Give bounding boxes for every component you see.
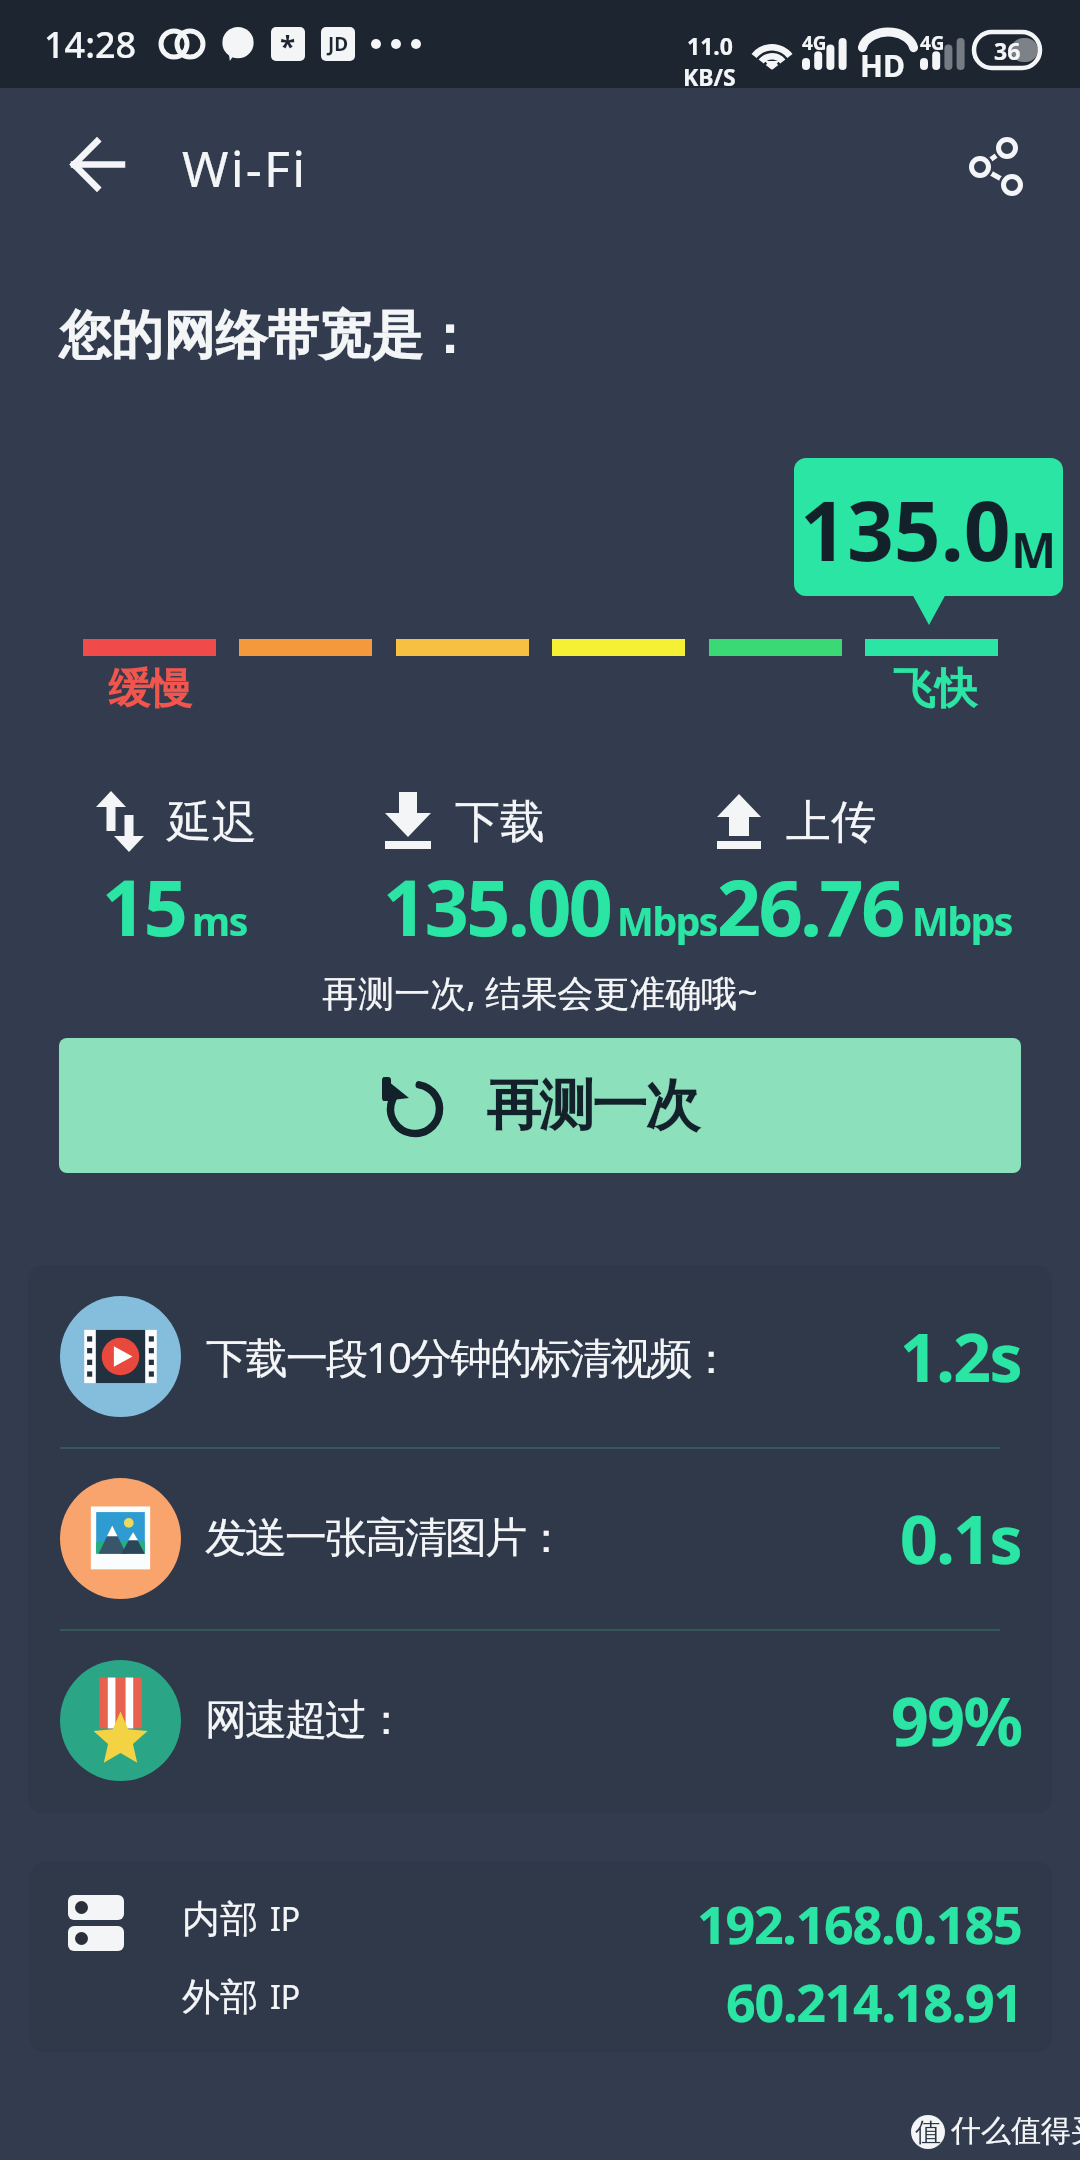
staticText: 11.0 xyxy=(687,30,733,61)
staticText: 内部 xyxy=(182,1895,258,1943)
button[interactable]: Share xyxy=(960,128,1030,206)
staticText: 99% xyxy=(891,1675,1022,1765)
staticText: 下载 xyxy=(455,794,545,851)
staticText: 135.0 xyxy=(800,473,1011,585)
staticText: 14:28 xyxy=(44,20,137,69)
staticText: 36 xyxy=(994,35,1021,66)
staticText: 135.00 xyxy=(383,854,611,959)
staticText: 26.76 xyxy=(717,854,903,959)
staticText: 网速超过： xyxy=(206,1694,406,1747)
staticText: 15 xyxy=(102,854,186,959)
staticText: 您的网络带宽是： xyxy=(59,303,475,369)
staticText: 1.2s xyxy=(900,1311,1022,1401)
button[interactable]: Back xyxy=(48,115,146,213)
staticText: Wi-Fi xyxy=(182,134,308,202)
staticText: 缓慢 xyxy=(108,663,192,716)
staticText: KB/S xyxy=(683,61,736,92)
staticText: 延迟 xyxy=(167,794,257,851)
staticText: IP xyxy=(270,1975,301,2019)
staticText: Mbps xyxy=(617,894,718,947)
staticText: 60.214.18.91 xyxy=(726,1966,1022,2028)
staticText: 值 xyxy=(915,2116,941,2149)
staticText: ms xyxy=(192,894,247,947)
button[interactable]: 发送一张高清图片： xyxy=(28,1447,1052,1629)
staticText: 192.168.0.185 xyxy=(697,1888,1022,1950)
staticText: 再测一次, 结果会更准确哦~ xyxy=(0,968,1080,1017)
staticText: Mbps xyxy=(912,894,1013,947)
staticText: * xyxy=(280,27,296,61)
staticText: HD xyxy=(860,45,905,86)
staticText: 飞快 xyxy=(893,663,977,716)
button[interactable]: 下载一段10分钟的标清视频： xyxy=(28,1265,1052,1447)
staticText: JD xyxy=(328,31,349,57)
staticText: 再测一次 xyxy=(487,1071,699,1140)
button[interactable]: 网速超过： xyxy=(28,1629,1052,1811)
staticText: 4G xyxy=(920,30,945,56)
staticText: 上传 xyxy=(786,794,876,851)
staticText: 什么值得买 xyxy=(951,2112,1080,2150)
staticText: 0.1s xyxy=(900,1493,1022,1583)
button[interactable]: 内部 xyxy=(30,1888,1052,1950)
staticText: 下载一段10分钟的标清视频： xyxy=(206,1328,731,1385)
staticText: M xyxy=(1011,517,1057,582)
staticText: 外部 xyxy=(182,1973,258,2021)
staticText: 发送一张高清图片： xyxy=(206,1512,566,1565)
button[interactable]: 再测一次 xyxy=(59,1038,1021,1173)
staticText: 4G xyxy=(802,30,827,56)
button[interactable]: 外部 xyxy=(30,1966,1052,2028)
staticText: IP xyxy=(270,1897,301,1941)
